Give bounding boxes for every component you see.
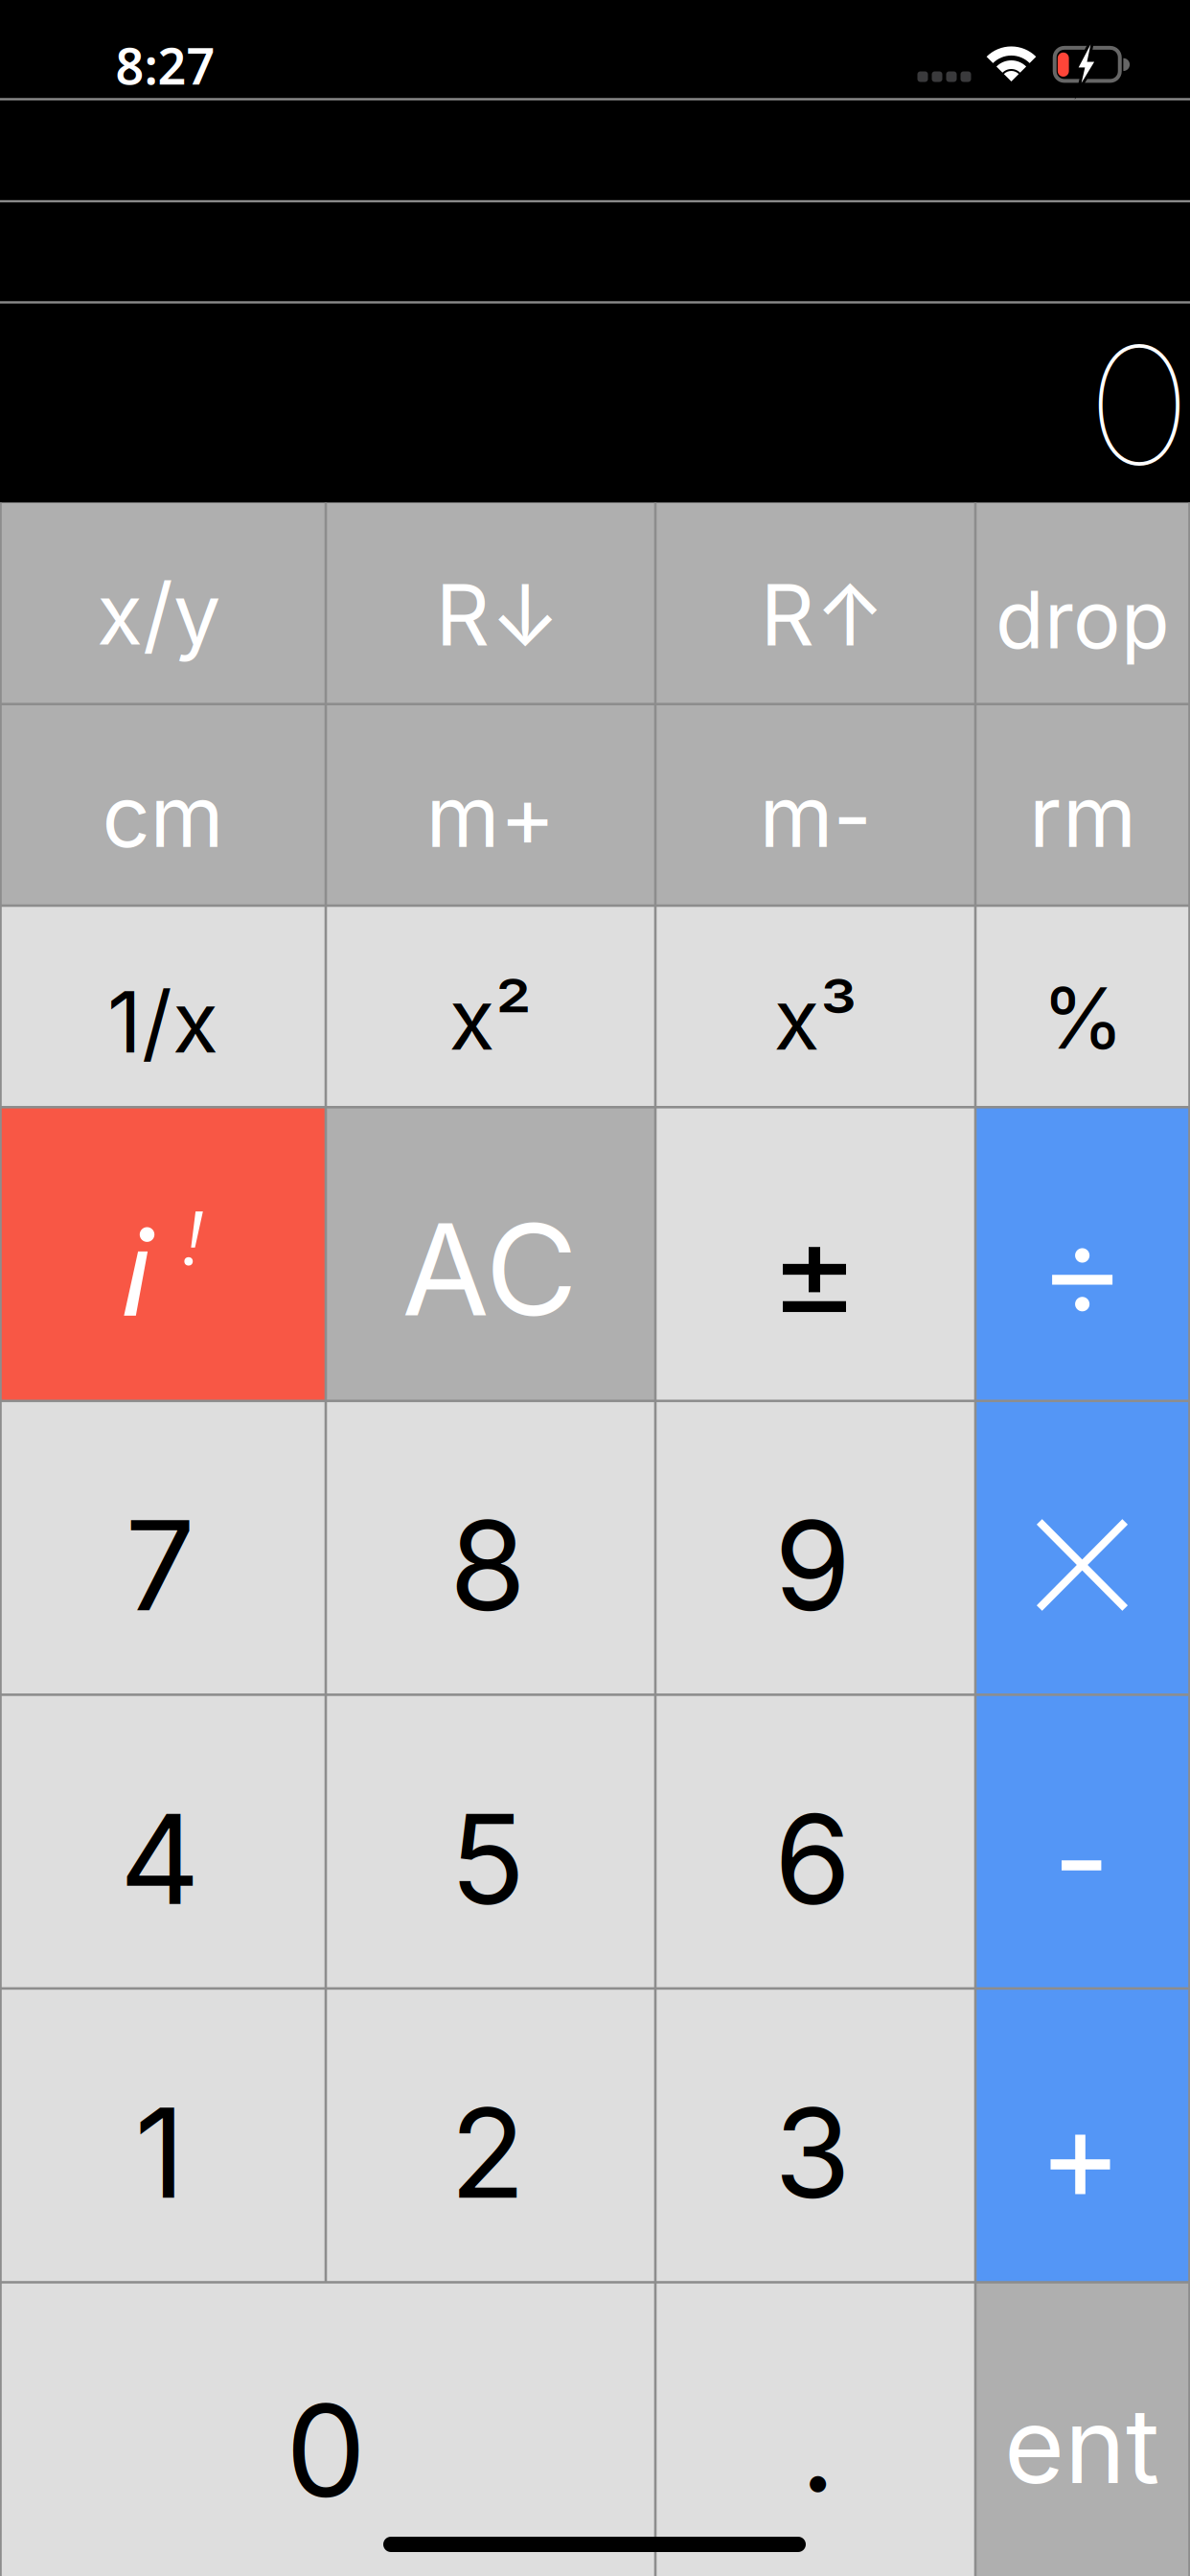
button[interactable]: m- — [655, 704, 975, 906]
button[interactable]: Divide — [975, 1107, 1190, 1401]
staticText: rm — [1029, 765, 1136, 867]
staticText: . — [800, 2371, 835, 2521]
button[interactable]: Multiply — [975, 1401, 1190, 1695]
staticText: 9 — [774, 1490, 851, 1640]
button[interactable]: Minus — [975, 1695, 1190, 1988]
button[interactable]: Plus — [975, 1988, 1190, 2282]
staticText: x³ — [774, 968, 857, 1070]
button[interactable]: Plus minus — [655, 1107, 975, 1401]
staticText: drop — [995, 572, 1170, 667]
button[interactable]: x² — [326, 906, 655, 1107]
staticText: 2 — [450, 2078, 526, 2228]
button[interactable]: AC — [326, 1107, 655, 1401]
button[interactable]: 0 — [0, 2282, 655, 2576]
staticText: 6 — [774, 1784, 851, 1934]
button[interactable]: 4 — [0, 1695, 326, 1988]
staticText: 3 — [774, 2078, 851, 2228]
button[interactable]: . — [655, 2282, 975, 2576]
staticText: m- — [759, 765, 871, 867]
staticText: R↓ — [435, 564, 560, 666]
button[interactable]: R↑ — [655, 503, 975, 704]
button[interactable]: x³ — [655, 906, 975, 1107]
button[interactable]: i factorial — [0, 1107, 326, 1401]
button[interactable]: 1/x — [0, 906, 326, 1107]
staticText: 0 — [286, 2373, 366, 2528]
button[interactable]: m+ — [326, 704, 655, 906]
button[interactable]: 5 — [326, 1695, 655, 1988]
staticText: R↑ — [760, 564, 885, 666]
staticText: 8:27 — [115, 32, 215, 98]
staticText: 0 — [1094, 306, 1185, 504]
staticText: 5 — [450, 1784, 526, 1934]
button[interactable]: drop — [975, 503, 1190, 704]
button[interactable]: 1 — [0, 1988, 326, 2282]
staticText: x/y — [97, 563, 220, 665]
button[interactable]: rm — [975, 704, 1190, 906]
button[interactable]: 8 — [326, 1401, 655, 1695]
button[interactable]: 7 — [0, 1401, 326, 1695]
button[interactable]: x/y — [0, 503, 326, 704]
staticText: % — [1041, 967, 1124, 1069]
button[interactable]: 2 — [326, 1988, 655, 2282]
button[interactable]: 9 — [655, 1401, 975, 1695]
staticText: 1 — [135, 2078, 185, 2228]
button[interactable]: ent — [975, 2282, 1190, 2576]
staticText: 1/x — [107, 971, 218, 1073]
staticText: 4 — [120, 1784, 200, 1934]
staticText: 8 — [449, 1490, 526, 1640]
button[interactable]: 6 — [655, 1695, 975, 1988]
staticText: x² — [449, 968, 532, 1070]
button[interactable]: % — [975, 906, 1190, 1107]
button[interactable]: R↓ — [326, 503, 655, 704]
staticText: AC — [402, 1193, 577, 1346]
button[interactable]: cm — [0, 704, 326, 906]
staticText: cm — [102, 765, 224, 867]
staticText: ent — [1004, 2383, 1159, 2508]
staticText: m+ — [426, 765, 555, 867]
button[interactable]: 3 — [655, 1988, 975, 2282]
staticText: 7 — [125, 1490, 195, 1640]
